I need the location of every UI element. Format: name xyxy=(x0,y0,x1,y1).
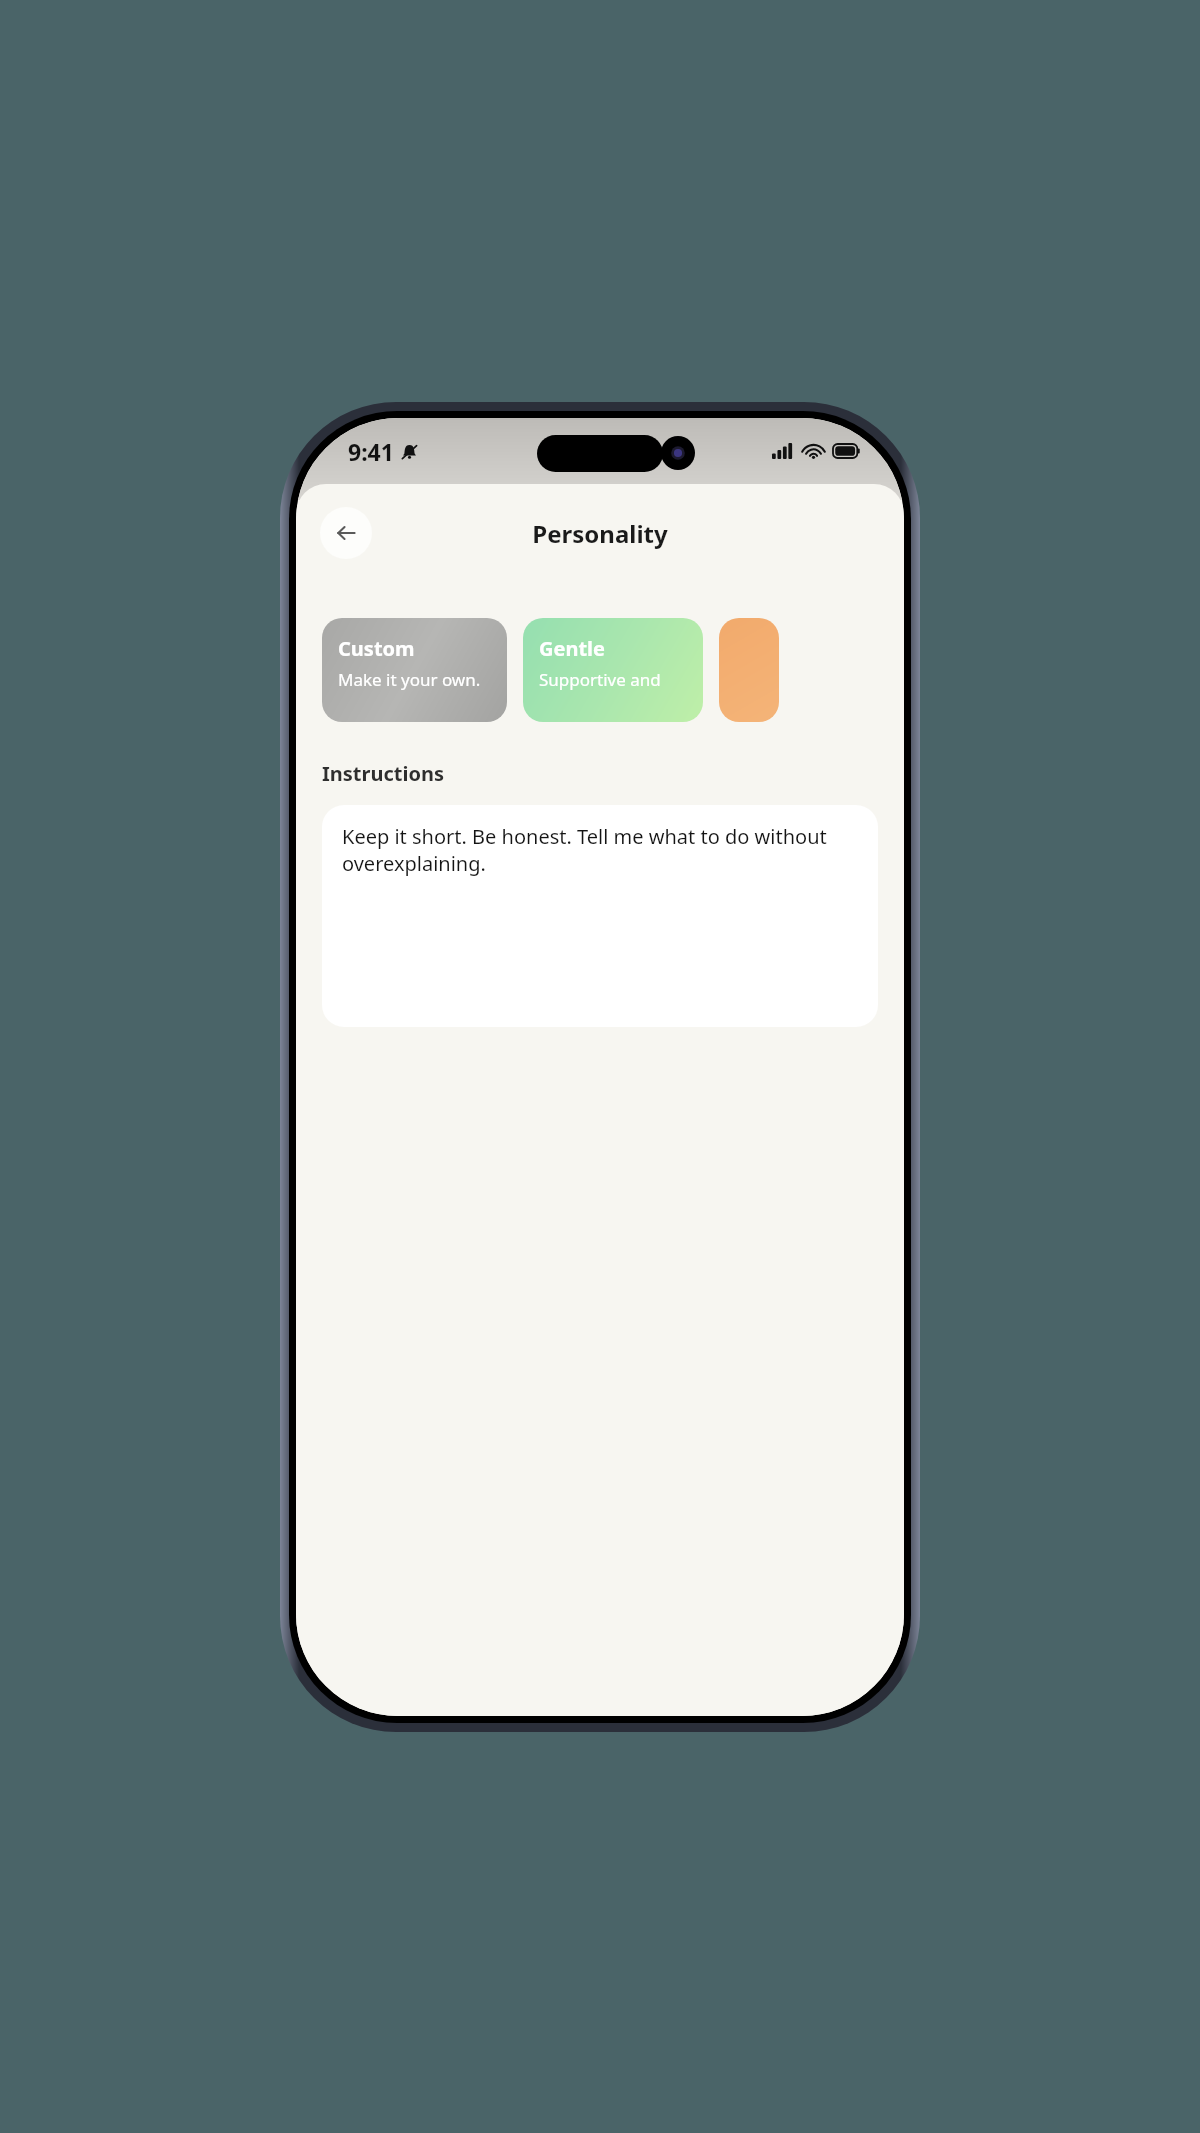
button[interactable]: Custom xyxy=(322,618,507,722)
staticText: Keep it short. Be honest. Tell me what t… xyxy=(342,823,858,877)
staticText: Personality xyxy=(532,517,668,550)
button[interactable]: More personalities xyxy=(719,618,779,722)
staticText: Supportive and calm. xyxy=(539,668,703,691)
staticText: 9:41 xyxy=(348,436,394,467)
button[interactable]: Back xyxy=(320,507,372,559)
staticText: Make it your own. xyxy=(338,668,481,691)
staticText: Custom xyxy=(338,635,415,662)
button[interactable]: Gentle xyxy=(523,618,703,722)
button[interactable]: Keep it short. Be honest. Tell me what t… xyxy=(322,805,878,1027)
staticText: Instructions xyxy=(322,760,444,787)
staticText: Gentle xyxy=(539,635,605,662)
